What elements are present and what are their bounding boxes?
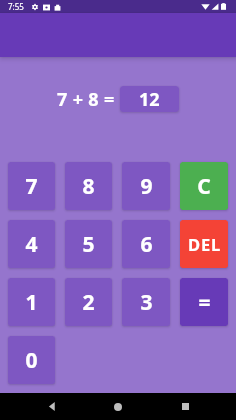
staticText: DEL xyxy=(188,233,221,255)
button[interactable]: Six xyxy=(122,220,170,268)
other: Settings xyxy=(31,3,39,11)
other: Cast xyxy=(43,4,50,11)
staticText: 1 xyxy=(25,288,38,317)
staticText: 3 xyxy=(140,288,153,317)
button[interactable]: Zero xyxy=(8,336,55,384)
staticText: 12 xyxy=(139,87,160,112)
staticText: 8 xyxy=(82,172,95,201)
button[interactable]: Delete xyxy=(180,220,228,268)
button[interactable]: Seven xyxy=(8,162,55,210)
button[interactable]: Nine xyxy=(122,162,170,210)
staticText: 7:55 xyxy=(8,1,24,12)
button[interactable]: Four xyxy=(8,220,55,268)
button[interactable]: Back xyxy=(37,393,67,420)
button[interactable]: Two xyxy=(65,278,112,326)
button[interactable]: Equals xyxy=(180,278,228,326)
staticText: 9 xyxy=(140,172,153,201)
button[interactable]: Clear xyxy=(180,162,228,210)
staticText: 2 xyxy=(82,288,95,317)
other: Wi-Fi xyxy=(201,2,210,11)
other: Screen lock xyxy=(54,4,61,11)
staticText: = xyxy=(198,288,211,317)
button[interactable]: Five xyxy=(65,220,112,268)
button[interactable]: Recent apps xyxy=(170,393,200,420)
staticText: 6 xyxy=(140,230,153,259)
button[interactable]: One xyxy=(8,278,55,326)
staticText: 4 xyxy=(25,230,38,259)
staticText: 5 xyxy=(82,230,95,259)
button[interactable]: Home xyxy=(103,393,133,420)
other: Battery xyxy=(220,2,227,11)
staticText: 7 xyxy=(25,172,38,201)
button[interactable]: Eight xyxy=(65,162,112,210)
other: Mobile signal xyxy=(211,2,219,11)
button[interactable]: 12 xyxy=(120,86,179,112)
staticText: 7 + 8 = xyxy=(57,87,115,112)
button[interactable]: Three xyxy=(122,278,170,326)
staticText: C xyxy=(197,172,211,201)
staticText: 0 xyxy=(25,346,38,375)
